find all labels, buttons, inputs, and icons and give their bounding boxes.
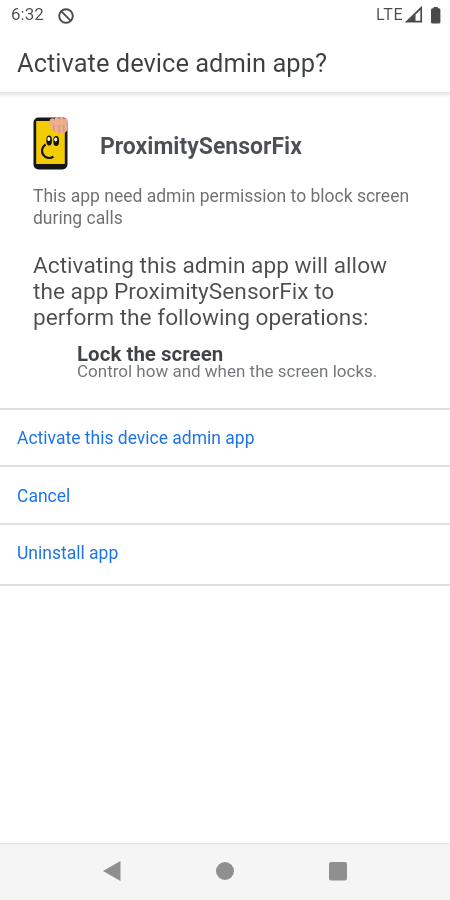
staticText: Activate device admin app? [17,48,328,78]
staticText: Cancel [17,486,71,507]
staticText: This app need admin permission to block … [33,186,410,228]
staticText: Activating this admin app will allow the… [33,252,388,330]
staticText: ProximitySensorFix [100,133,302,160]
staticText: LTE [376,5,404,24]
staticText: Control how and when the screen locks. [77,361,378,381]
button[interactable] [77,844,145,900]
staticText: Uninstall app [17,543,119,564]
staticText: Lock the screen [77,342,224,366]
button[interactable]: Cancel [0,467,450,523]
button[interactable]: Uninstall app [0,524,450,583]
button[interactable] [191,844,259,900]
button[interactable]: Activate this device admin app [0,409,450,465]
staticText: 6:32 [11,4,44,24]
staticText: Activate this device admin app [17,428,255,449]
button[interactable] [304,844,372,900]
